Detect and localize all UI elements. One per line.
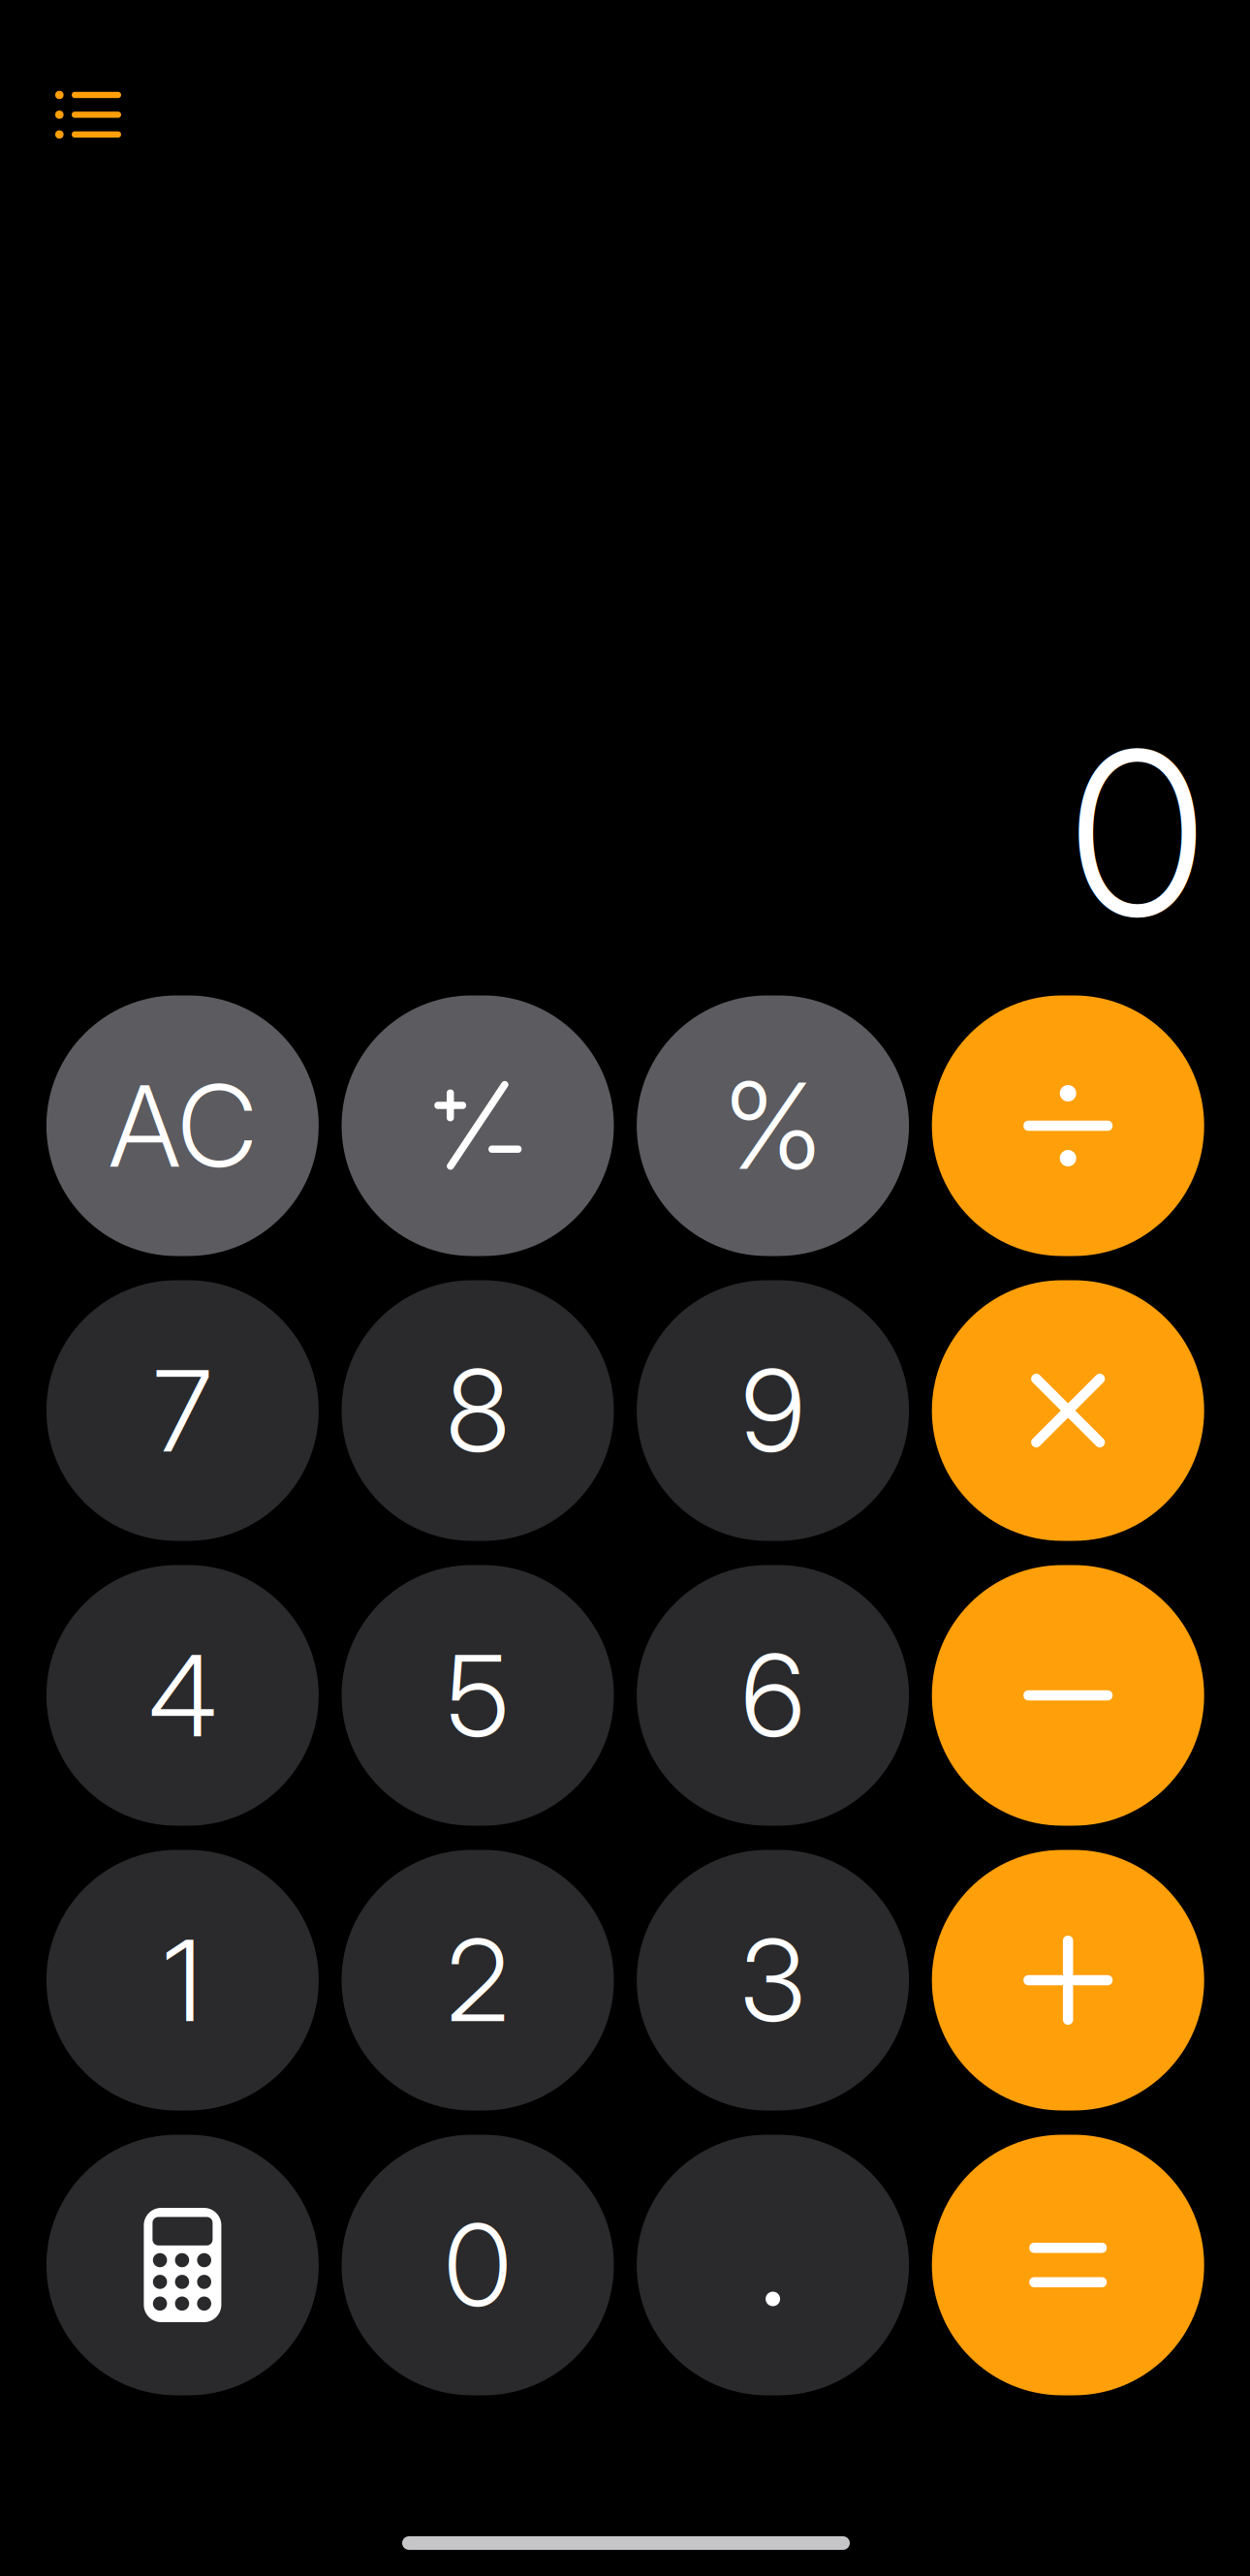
button[interactable]: Plus [932,1850,1204,2110]
button[interactable]: 7 [46,1280,319,1541]
button[interactable]: 9 [637,1280,909,1541]
button[interactable]: Divide [932,995,1204,1256]
button[interactable]: Multiply [932,1280,1204,1541]
button[interactable]: 2 [342,1850,614,2110]
button[interactable]: % [637,995,909,1256]
button[interactable]: 3 [637,1850,909,2110]
staticText: AC [109,1058,256,1194]
staticText: 4 [149,1627,216,1763]
button[interactable]: 1 [46,1850,319,2110]
button[interactable]: AC [46,995,319,1256]
button[interactable]: 4 [46,1565,319,1826]
staticText: 7 [153,1343,212,1479]
staticText: 0 [1070,696,1204,971]
staticText: 9 [741,1343,804,1479]
button[interactable]: 0 [342,2135,614,2395]
button[interactable]: Plus Minus [342,995,614,1256]
button[interactable]: 6 [637,1565,909,1826]
button[interactable]: Minus [932,1565,1204,1826]
staticText: 8 [446,1343,509,1479]
button[interactable]: 8 [342,1280,614,1541]
button[interactable]: 5 [342,1565,614,1826]
button[interactable]: Equals [932,2135,1204,2395]
button[interactable]: History [30,56,146,172]
staticText: 1 [163,1912,202,2048]
staticText: % [724,1054,822,1198]
button[interactable]: Calculator [46,2135,319,2395]
staticText: 6 [741,1627,804,1763]
staticText: 5 [447,1627,509,1763]
staticText: 3 [740,1912,805,2048]
button[interactable]: Decimal point [637,2135,909,2395]
staticText: 2 [447,1912,509,2048]
staticText: 0 [444,2197,511,2333]
